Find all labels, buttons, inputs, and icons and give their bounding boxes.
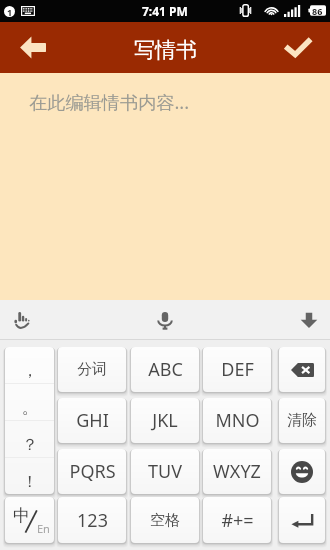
staticText: GHI: [76, 408, 109, 433]
button[interactable]: 清除: [279, 398, 325, 443]
staticText: 。: [22, 398, 38, 418]
button[interactable]: Enter: [279, 497, 325, 543]
staticText: WXYZ: [213, 459, 261, 484]
staticText: DEF: [221, 357, 254, 382]
button[interactable]: Save: [271, 22, 324, 73]
button[interactable]: GHI: [58, 398, 126, 443]
button[interactable]: 空格: [131, 497, 199, 543]
staticText: 中: [13, 505, 30, 526]
button[interactable]: Delete: [279, 347, 325, 392]
staticText: 空格: [150, 511, 180, 530]
button[interactable]: TUV: [131, 449, 199, 494]
button[interactable]: ABC: [131, 347, 199, 392]
button[interactable]: ，: [5, 347, 54, 494]
button[interactable]: Back: [6, 22, 59, 73]
button[interactable]: Handwriting input: [0, 300, 44, 340]
staticText: 分词: [77, 360, 107, 379]
button[interactable]: Emoji: [279, 449, 325, 494]
staticText: #+=: [221, 508, 254, 533]
staticText: En: [37, 521, 50, 536]
staticText: ？: [22, 435, 38, 455]
button[interactable]: MNO: [203, 398, 271, 443]
button[interactable]: #+=: [203, 497, 271, 543]
staticText: 写情书: [134, 37, 197, 63]
staticText: ABC: [148, 357, 183, 382]
button[interactable]: DEF: [203, 347, 271, 392]
button[interactable]: JKL: [131, 398, 199, 443]
button[interactable]: 分词: [58, 347, 126, 392]
staticText: 123: [77, 508, 108, 533]
button[interactable]: PQRS: [58, 449, 126, 494]
staticText: 在此编辑情书内容...: [29, 90, 190, 115]
button[interactable]: WXYZ: [203, 449, 271, 494]
staticText: 86: [312, 5, 323, 17]
staticText: ，: [22, 361, 38, 381]
button[interactable]: Hide keyboard: [287, 300, 330, 340]
staticText: PQRS: [69, 459, 116, 484]
staticText: ！: [22, 472, 38, 492]
staticText: JKL: [152, 408, 178, 433]
staticText: 1: [7, 6, 13, 17]
staticText: 清除: [287, 411, 317, 430]
button[interactable]: 中: [5, 497, 54, 543]
staticText: 7:41 PM: [142, 3, 188, 19]
button[interactable]: 123: [58, 497, 126, 543]
button[interactable]: Voice input: [143, 300, 187, 340]
staticText: TUV: [148, 459, 182, 484]
staticText: MNO: [215, 408, 260, 433]
